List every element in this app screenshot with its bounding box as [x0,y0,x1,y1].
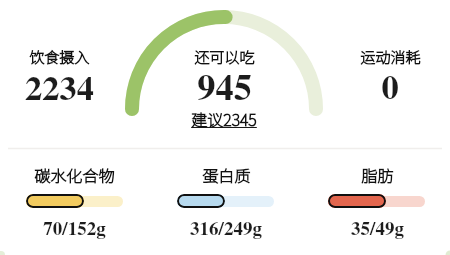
staticText: 碳水化合物 [34,163,115,186]
staticText: 饮食摄入 [29,46,90,68]
staticText: 还可以吃 [194,46,255,68]
button[interactable]: 饮食摄入 [0,27,169,87]
staticText: 35/49g [351,214,404,242]
staticText: 还可以吃 [194,46,255,68]
staticText: 运动消耗 [360,46,421,68]
button[interactable] [171,158,281,248]
button[interactable] [322,158,432,248]
staticText: 建议2345 [191,107,257,130]
staticText: 945 [197,59,252,112]
staticText: 蛋白质 [202,163,251,186]
staticText: 316/249g [190,214,262,242]
button[interactable] [19,158,129,248]
staticText: 饮食摄入 [29,46,90,68]
button[interactable]: 建议2345 [114,88,334,148]
staticText: 0 [381,60,399,110]
staticText: 70/152g [43,214,106,242]
staticText: 脂肪 [361,163,394,186]
staticText: 运动消耗 [360,46,421,68]
staticText: 建议2345 [191,107,257,130]
button[interactable]: 运动消耗 [280,27,450,87]
staticText: 脂肪 [361,163,394,186]
staticText: 2234 [25,61,94,111]
staticText: 碳水化合物 [34,163,115,186]
staticText: 蛋白质 [202,163,251,186]
